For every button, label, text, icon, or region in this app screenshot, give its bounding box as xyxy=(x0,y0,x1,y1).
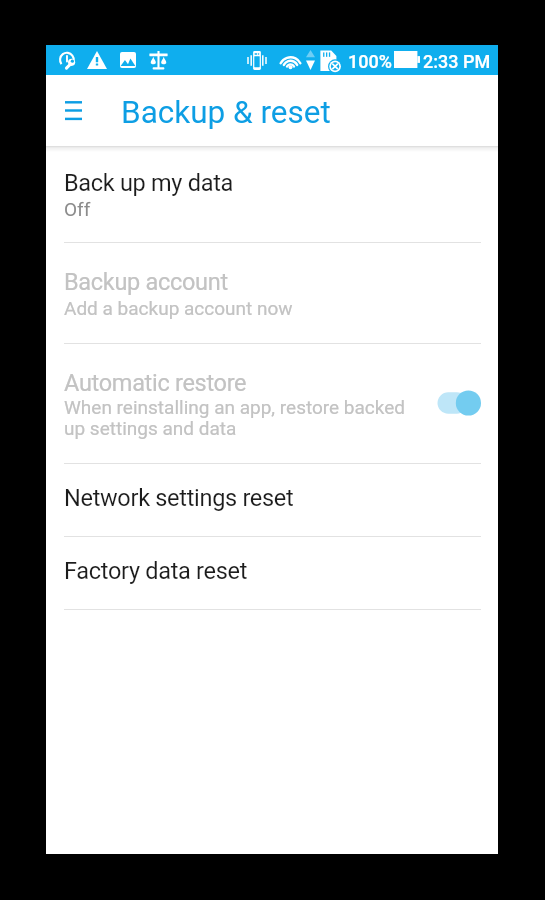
button[interactable]: Back up my data xyxy=(46,146,498,242)
staticText: 2:33 PM xyxy=(423,51,491,72)
staticText: Backup account xyxy=(64,268,228,296)
staticText: Add a backup account now xyxy=(64,297,293,319)
button[interactable]: Factory data reset xyxy=(46,536,498,609)
staticText: Network settings reset xyxy=(64,484,294,512)
button[interactable]: Network settings reset xyxy=(46,463,498,536)
staticText: Backup & reset xyxy=(121,94,331,131)
staticText: 100% xyxy=(348,51,392,72)
staticText: Back up my data xyxy=(64,169,234,197)
button[interactable]: Automatic restore xyxy=(46,343,498,463)
staticText: Automatic restore xyxy=(64,369,247,397)
button[interactable]: Open navigation menu xyxy=(51,88,95,132)
staticText: When reinstalling an app, restore backed… xyxy=(64,396,410,439)
button[interactable]: Backup account xyxy=(46,242,498,343)
staticText: Off xyxy=(64,198,91,220)
staticText: Factory data reset xyxy=(64,557,248,585)
